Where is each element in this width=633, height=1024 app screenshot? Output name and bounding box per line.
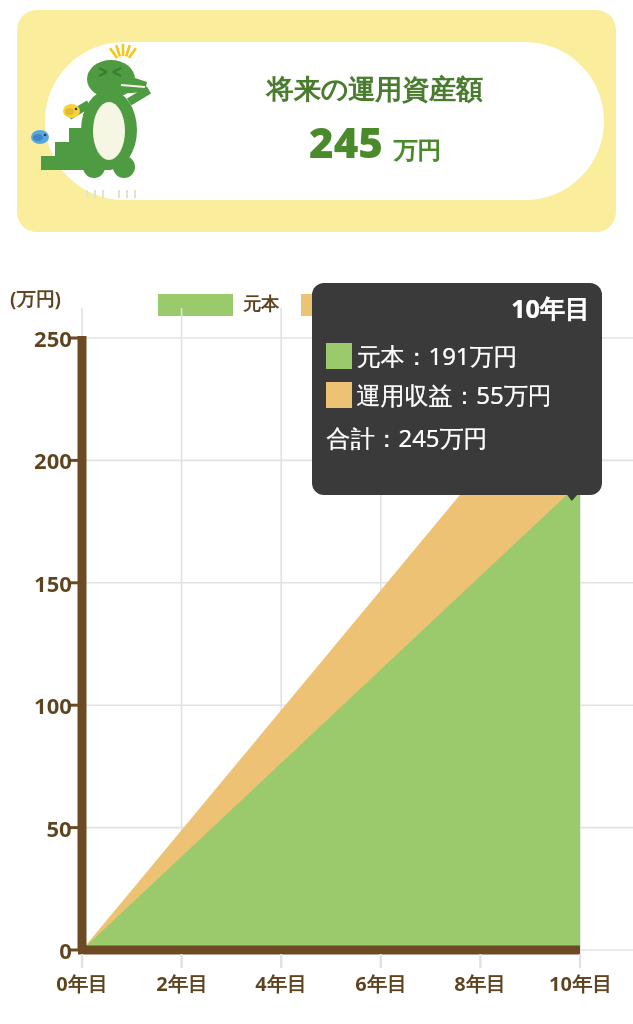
staticText: 150 [34,568,72,598]
staticText: 元本：191万円 [356,339,518,372]
staticText: 2年目 [156,970,208,997]
staticText: 100 [34,690,72,720]
staticText: 万円 [393,136,441,166]
staticText: 合計：245万円 [326,421,488,454]
staticText: 8年目 [454,970,506,997]
button[interactable]: 将来の運用資産額 [17,10,616,232]
staticText: 50 [46,813,72,843]
staticText: 0 [59,935,72,965]
staticText: 10年目 [549,970,612,997]
staticText: 4年目 [255,970,307,997]
staticText: 元本 [243,293,279,316]
staticText: 6年目 [355,970,407,997]
staticText: 10年目 [511,291,590,325]
staticText: 運用収益：55万円 [356,378,552,411]
button[interactable]: 10年目 [312,283,602,495]
staticText: 250 [34,323,72,353]
staticText: 200 [34,445,72,475]
staticText: 将来の運用資産額 [266,73,483,107]
staticText: 0年目 [56,970,108,997]
staticText: 245 [309,113,383,170]
staticText: (万円) [10,286,61,312]
